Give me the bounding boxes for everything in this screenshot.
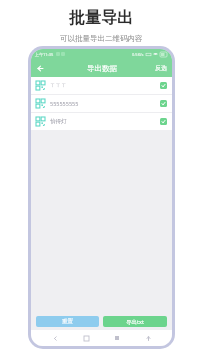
staticText: 0.5K/s (132, 52, 144, 57)
button[interactable]: Home (79, 331, 93, 345)
button[interactable]: 导出txt (103, 316, 167, 327)
button[interactable]: Recents (110, 331, 124, 345)
staticText: ㄒㄒㄒ (50, 82, 67, 89)
button[interactable]: Keyboard (141, 331, 155, 345)
button[interactable]: Back (31, 59, 49, 77)
staticText: 怡得灯 (50, 118, 67, 125)
button[interactable]: 反选 (155, 64, 167, 72)
button[interactable]: 555555555 (31, 95, 172, 112)
button[interactable]: 重置 (36, 316, 99, 327)
button[interactable]: Back (48, 331, 62, 345)
staticText: 重置 (62, 318, 73, 325)
staticText: 可以批量导出二维码内容 (60, 34, 143, 43)
staticText: 上午11:35 (35, 52, 54, 57)
button[interactable]: 怡得灯 (31, 113, 172, 130)
button[interactable]: ㄒㄒㄒ (31, 77, 172, 94)
staticText: 555555555 (50, 100, 79, 107)
staticText: 批量导出 (69, 8, 133, 28)
staticText: 导出txt (126, 318, 144, 326)
staticText: 导出数据 (87, 64, 117, 73)
staticText: 反选 (155, 64, 167, 72)
